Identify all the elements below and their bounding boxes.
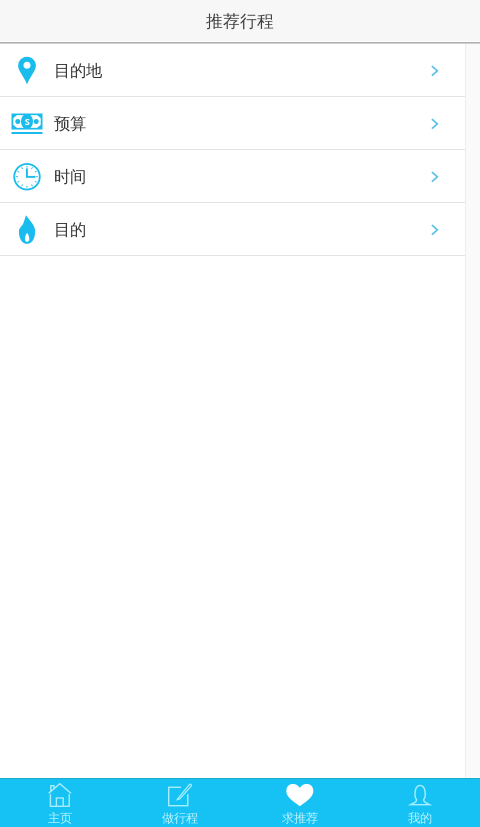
staticText: 目的地 bbox=[54, 60, 102, 81]
button[interactable]: 目的地 bbox=[0, 44, 465, 97]
staticText: 预算 bbox=[54, 113, 86, 134]
staticText: 推荐行程 bbox=[206, 11, 274, 32]
button[interactable]: 我的 bbox=[360, 779, 480, 827]
button[interactable]: 主页 bbox=[0, 779, 120, 827]
button[interactable]: 做行程 bbox=[120, 779, 240, 827]
staticText: 做行程 bbox=[162, 810, 198, 826]
button[interactable]: 时间 bbox=[0, 150, 465, 203]
staticText: 主页 bbox=[48, 810, 72, 826]
button[interactable]: S bbox=[0, 97, 465, 150]
staticText: 我的 bbox=[408, 810, 432, 826]
staticText: S bbox=[24, 115, 29, 128]
staticText: 目的 bbox=[54, 219, 86, 240]
button[interactable]: 求推荐 bbox=[240, 779, 360, 827]
staticText: 时间 bbox=[54, 166, 86, 187]
staticText: 求推荐 bbox=[282, 810, 318, 826]
button[interactable]: 目的 bbox=[0, 203, 465, 256]
